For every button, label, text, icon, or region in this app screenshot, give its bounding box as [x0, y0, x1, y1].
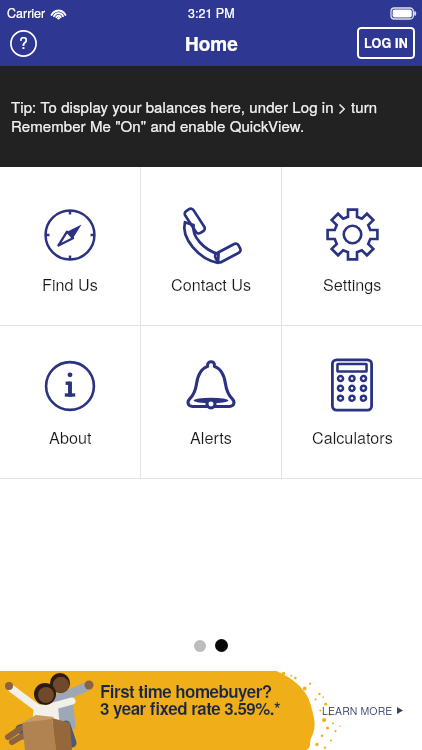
- staticText: Calculators: [312, 425, 393, 448]
- button[interactable]: Contact Us: [141, 167, 281, 325]
- staticText: First time homebuyer? 3 year fixed rate …: [100, 679, 281, 721]
- staticText: ?: [19, 31, 28, 54]
- button[interactable]: [215, 639, 228, 652]
- button[interactable]: Calculators: [282, 326, 422, 478]
- staticText: Contact Us: [171, 272, 252, 295]
- staticText: Home: [185, 30, 238, 57]
- button[interactable]: [194, 640, 206, 652]
- staticText: LEARN MORE: [322, 703, 393, 718]
- staticText: Tip: To display your balances here, unde…: [11, 96, 406, 137]
- staticText: Carrier: [7, 4, 46, 22]
- button[interactable]: Find Us: [0, 167, 140, 325]
- button[interactable]: Help: [10, 30, 37, 57]
- button[interactable]: Settings: [282, 167, 422, 325]
- staticText: About: [49, 425, 92, 448]
- staticText: Find Us: [42, 272, 98, 295]
- staticText: Settings: [323, 272, 382, 295]
- staticText: 3:21 PM: [188, 4, 235, 22]
- staticText: Alerts: [190, 425, 232, 448]
- button[interactable]: First time homebuyer? 3 year fixed rate …: [0, 671, 422, 750]
- button[interactable]: Alerts: [141, 326, 281, 478]
- button[interactable]: LOG IN: [357, 27, 415, 59]
- button[interactable]: About: [0, 326, 140, 478]
- staticText: LOG IN: [364, 34, 408, 52]
